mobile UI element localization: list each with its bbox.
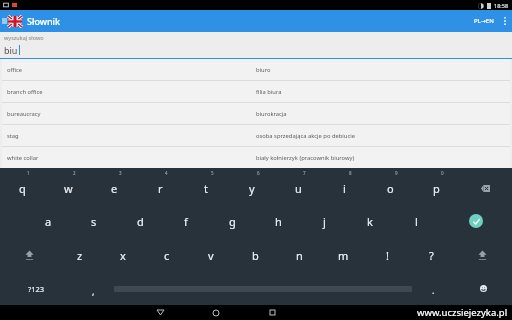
staticText: osoba sprzedająca akcje po debiucie bbox=[256, 132, 355, 140]
staticText: t bbox=[204, 181, 208, 196]
button[interactable]: biu bbox=[0, 44, 512, 56]
staticText: u bbox=[295, 181, 302, 196]
button[interactable]: h bbox=[255, 204, 301, 238]
staticText: Słownik bbox=[27, 15, 61, 27]
button[interactable]: 5 bbox=[183, 168, 229, 204]
button[interactable]: More options bbox=[498, 10, 512, 32]
button[interactable]: k bbox=[347, 204, 393, 238]
button[interactable]: stag bbox=[2, 125, 510, 146]
button[interactable]: 2 bbox=[45, 168, 91, 204]
staticText: ? bbox=[429, 248, 434, 263]
staticText: 3 bbox=[119, 170, 122, 176]
staticText: a bbox=[45, 214, 52, 229]
staticText: white collar bbox=[7, 154, 256, 162]
button[interactable]: 0 bbox=[413, 168, 459, 204]
staticText: g bbox=[229, 214, 236, 229]
button[interactable]: Recent apps bbox=[262, 305, 282, 320]
staticText: b bbox=[252, 248, 259, 263]
button[interactable]: x bbox=[101, 238, 145, 272]
staticText: biuro bbox=[256, 66, 271, 74]
staticText: h bbox=[275, 214, 282, 229]
button[interactable]: Space bbox=[114, 272, 412, 305]
staticText: x bbox=[120, 248, 126, 263]
staticText: e bbox=[111, 181, 118, 196]
button[interactable]: l bbox=[393, 204, 439, 238]
button[interactable]: c bbox=[145, 238, 189, 272]
button[interactable]: Backspace bbox=[459, 168, 512, 204]
button[interactable]: m bbox=[321, 238, 365, 272]
button[interactable]: Enter bbox=[439, 204, 512, 238]
staticText: z bbox=[77, 248, 83, 263]
button[interactable]: g bbox=[209, 204, 255, 238]
staticText: , bbox=[92, 285, 95, 297]
staticText: 8 bbox=[349, 170, 352, 176]
staticText: m bbox=[338, 248, 349, 263]
button[interactable]: , bbox=[72, 272, 114, 305]
staticText: r bbox=[158, 181, 163, 196]
staticText: c bbox=[164, 248, 170, 263]
button[interactable]: Emoji bbox=[454, 272, 512, 305]
staticText: w bbox=[64, 181, 73, 196]
staticText: . bbox=[432, 284, 435, 296]
button[interactable]: office bbox=[2, 59, 510, 80]
button[interactable]: s bbox=[71, 204, 117, 238]
staticText: f bbox=[184, 214, 188, 229]
staticText: office bbox=[7, 66, 256, 74]
button[interactable]: b bbox=[233, 238, 277, 272]
staticText: 0 bbox=[441, 170, 444, 176]
staticText: v bbox=[208, 248, 214, 263]
button[interactable]: a bbox=[25, 204, 71, 238]
staticText: biu bbox=[4, 44, 18, 56]
staticText: 1 bbox=[27, 170, 30, 176]
staticText: o bbox=[387, 181, 394, 196]
staticText: 2 bbox=[73, 170, 76, 176]
button[interactable]: d bbox=[117, 204, 163, 238]
button[interactable]: ! bbox=[365, 238, 409, 272]
staticText: j bbox=[323, 214, 326, 229]
staticText: i bbox=[343, 181, 346, 196]
staticText: filia biura bbox=[256, 88, 282, 96]
staticText: 6 bbox=[257, 170, 260, 176]
button[interactable]: Shift bbox=[453, 238, 512, 272]
button[interactable]: 3 bbox=[91, 168, 137, 204]
staticText: 4 bbox=[165, 170, 168, 176]
staticText: y bbox=[249, 181, 255, 196]
button[interactable]: 1 bbox=[0, 168, 45, 204]
button[interactable]: ?123 bbox=[0, 272, 72, 305]
staticText: branch office bbox=[7, 88, 256, 96]
button[interactable]: white collar bbox=[2, 147, 510, 168]
staticText: ?123 bbox=[28, 284, 45, 294]
staticText: q bbox=[19, 181, 26, 196]
button[interactable]: ? bbox=[409, 238, 453, 272]
staticText: 9 bbox=[395, 170, 398, 176]
staticText: 7 bbox=[303, 170, 306, 176]
button[interactable]: n bbox=[277, 238, 321, 272]
staticText: PL→EN bbox=[474, 17, 494, 25]
button[interactable]: bureaucracy bbox=[2, 103, 510, 124]
button[interactable]: Shift bbox=[0, 238, 58, 272]
button[interactable]: j bbox=[301, 204, 347, 238]
staticText: www.uczsiejezyka.pl bbox=[417, 306, 508, 319]
staticText: s bbox=[91, 214, 97, 229]
button[interactable]: Open navigation menu bbox=[0, 10, 8, 32]
button[interactable]: 4 bbox=[137, 168, 183, 204]
button[interactable]: PL→EN bbox=[470, 13, 498, 29]
button[interactable]: Home bbox=[206, 305, 226, 320]
button[interactable]: 7 bbox=[275, 168, 321, 204]
button[interactable]: Back bbox=[150, 305, 170, 320]
button[interactable]: . bbox=[412, 272, 454, 305]
staticText: 18:58 bbox=[494, 2, 509, 9]
staticText: p bbox=[433, 181, 440, 196]
staticText: d bbox=[137, 214, 144, 229]
button[interactable]: v bbox=[189, 238, 233, 272]
staticText: l bbox=[415, 214, 418, 229]
staticText: 5 bbox=[211, 170, 214, 176]
button[interactable]: f bbox=[163, 204, 209, 238]
staticText: n bbox=[296, 248, 303, 263]
button[interactable]: z bbox=[58, 238, 101, 272]
button[interactable]: 9 bbox=[367, 168, 413, 204]
button[interactable]: branch office bbox=[2, 81, 510, 102]
button[interactable]: 8 bbox=[321, 168, 367, 204]
button[interactable]: 6 bbox=[229, 168, 275, 204]
staticText: biurokracja bbox=[256, 110, 287, 118]
